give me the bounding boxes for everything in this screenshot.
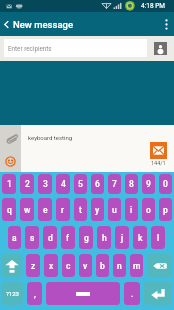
button[interactable]: q	[2, 198, 16, 221]
button[interactable]: 0	[159, 174, 172, 194]
button[interactable]: e	[38, 198, 52, 221]
staticText: p	[163, 205, 168, 215]
button[interactable]: 6	[91, 174, 104, 194]
button[interactable]: x	[44, 254, 58, 277]
staticText: ,	[34, 289, 36, 299]
staticText: m	[133, 261, 141, 271]
button[interactable]: m	[130, 254, 143, 277]
staticText: w	[24, 205, 31, 215]
button[interactable]: n	[113, 254, 126, 277]
button[interactable]: k	[133, 226, 147, 249]
staticText: e	[43, 205, 48, 215]
staticText: i	[130, 205, 133, 215]
button[interactable]: f	[61, 226, 75, 249]
button[interactable]: Back	[0, 12, 13, 36]
button[interactable]: Enter recipients	[4, 39, 147, 57]
button[interactable]: 3	[38, 174, 52, 194]
staticText: d	[48, 233, 53, 243]
button[interactable]: More options	[158, 12, 174, 36]
button[interactable]: 7	[108, 174, 121, 194]
staticText: b	[100, 261, 105, 271]
button[interactable]: .	[124, 282, 140, 305]
staticText: keyboard testing	[28, 134, 73, 141]
button[interactable]: 8	[125, 174, 138, 194]
button[interactable]	[46, 282, 120, 305]
button[interactable]: o	[142, 198, 155, 221]
staticText: o	[146, 205, 151, 215]
button[interactable]: ?123	[2, 282, 23, 305]
staticText: 8	[129, 179, 134, 189]
staticText: u	[112, 205, 117, 215]
button[interactable]: p	[159, 198, 172, 221]
staticText: a	[12, 233, 17, 243]
button[interactable]: v	[79, 254, 92, 277]
staticText: 7	[112, 179, 117, 189]
staticText: Enter recipients	[8, 45, 52, 52]
button[interactable]: t	[74, 198, 87, 221]
button[interactable]: 9	[142, 174, 155, 194]
button[interactable]: 4	[56, 174, 70, 194]
button[interactable]: u	[108, 198, 121, 221]
staticText: 9	[146, 179, 151, 189]
button[interactable]: b	[96, 254, 109, 277]
staticText: x	[49, 261, 54, 271]
button[interactable]: w	[20, 198, 34, 221]
staticText: v	[83, 261, 88, 271]
staticText: n	[117, 261, 122, 271]
staticText: l	[157, 233, 160, 243]
button[interactable]: i	[125, 198, 138, 221]
button[interactable]: r	[56, 198, 70, 221]
button[interactable]: ,	[27, 282, 42, 305]
staticText: 1	[7, 179, 12, 189]
staticText: c	[66, 261, 71, 271]
staticText: j	[121, 233, 124, 243]
staticText: 0	[163, 179, 168, 189]
button[interactable]: Contacts	[154, 42, 167, 55]
staticText: 4	[61, 179, 66, 189]
button[interactable]: s	[25, 226, 39, 249]
staticText: New message	[13, 19, 73, 30]
staticText: .	[131, 289, 134, 299]
button[interactable]: Emoji	[0, 151, 21, 172]
button[interactable]: 2	[20, 174, 34, 194]
staticText: 6	[95, 179, 100, 189]
button[interactable]: c	[62, 254, 75, 277]
staticText: s	[30, 233, 35, 243]
button[interactable]: Backspace	[147, 254, 172, 277]
staticText: y	[95, 205, 100, 215]
staticText: 2	[25, 179, 30, 189]
staticText: h	[102, 233, 107, 243]
button[interactable]: z	[26, 254, 40, 277]
button[interactable]: 1	[2, 174, 16, 194]
button[interactable]: Send	[150, 142, 167, 159]
button[interactable]: l	[151, 226, 165, 249]
staticText: 3	[43, 179, 48, 189]
button[interactable]: 5	[74, 174, 87, 194]
staticText: g	[84, 233, 89, 243]
button[interactable]: d	[43, 226, 57, 249]
staticText: f	[66, 233, 70, 243]
button[interactable]: Shift	[2, 254, 22, 277]
button[interactable]: j	[115, 226, 129, 249]
staticText: 5	[78, 179, 83, 189]
staticText: r	[61, 205, 65, 215]
button[interactable]: a	[8, 226, 21, 249]
staticText: k	[138, 233, 143, 243]
staticText: z	[31, 261, 36, 271]
staticText: ?123	[6, 290, 19, 297]
button[interactable]: h	[97, 226, 111, 249]
button[interactable]: y	[91, 198, 104, 221]
button[interactable]: g	[79, 226, 93, 249]
staticText: q	[7, 205, 12, 215]
button[interactable]: Attach	[0, 125, 21, 151]
staticText: 144/1	[151, 160, 166, 166]
staticText: t	[79, 205, 82, 215]
staticText: 4:18 PM	[141, 2, 165, 10]
button[interactable]: Enter	[144, 282, 172, 305]
